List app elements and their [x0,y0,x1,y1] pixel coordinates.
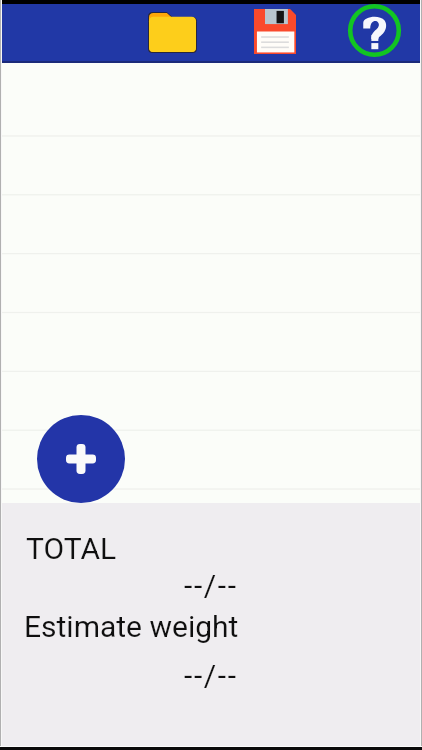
button[interactable] [0,490,422,503]
button[interactable] [0,195,422,254]
button[interactable]: Add [37,415,125,503]
staticText: --/-- [184,568,238,603]
button[interactable] [0,254,422,313]
button[interactable]: Save [246,2,304,60]
button[interactable] [0,431,422,490]
button[interactable] [0,313,422,372]
staticText: Estimate weight [24,609,239,644]
button[interactable]: Help [344,1,404,60]
button[interactable] [0,372,422,431]
staticText: --/-- [184,658,238,693]
button[interactable]: Open [141,5,204,60]
button[interactable] [0,136,422,195]
staticText: TOTAL [26,531,117,566]
